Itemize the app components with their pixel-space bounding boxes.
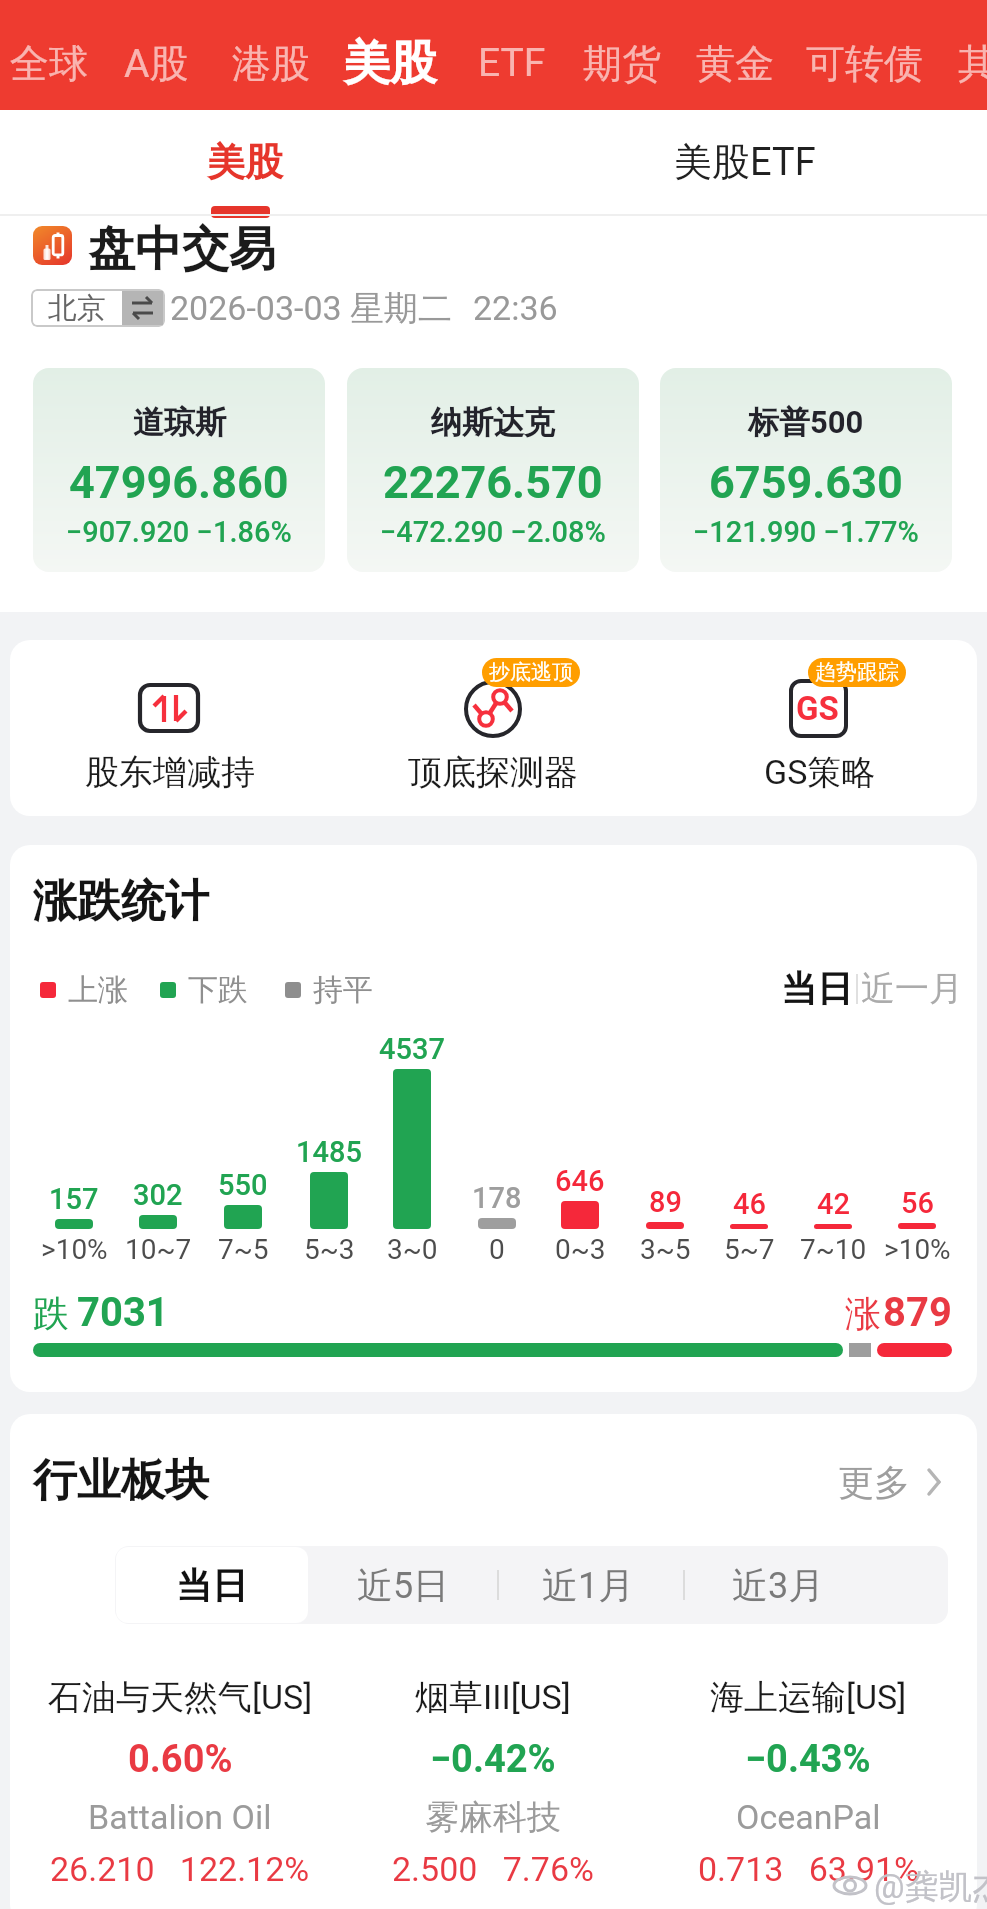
staticText: 879	[883, 1289, 952, 1336]
staticText: 46	[733, 1187, 766, 1221]
staticText: GS	[796, 689, 839, 728]
staticText: −907.920 −1.86%	[66, 515, 292, 549]
staticText: 跌	[33, 1291, 69, 1336]
staticText: 7031	[77, 1289, 169, 1336]
staticText: 22276.570	[383, 456, 603, 509]
button[interactable]	[60, 650, 280, 810]
button[interactable]: 其	[917, 8, 987, 118]
staticText: 上涨	[68, 971, 128, 1009]
staticText: 302	[133, 1178, 183, 1212]
staticText: 美股	[343, 34, 437, 93]
staticText: A股	[124, 39, 189, 88]
staticText: 趋势跟踪	[815, 659, 899, 685]
button[interactable]: 港股	[211, 8, 331, 118]
staticText: 海上运输[US]	[710, 1676, 907, 1719]
staticText: @龚凯杰	[874, 1865, 987, 1908]
button[interactable]: 美股ETF	[620, 112, 870, 212]
staticText: 持平	[313, 971, 373, 1009]
button[interactable]	[660, 368, 952, 572]
staticText: 其	[958, 39, 987, 88]
staticText: 近一月	[861, 967, 963, 1010]
staticText: 顶底探测器	[408, 751, 578, 794]
staticText: OceanPal	[736, 1797, 881, 1837]
staticText: 期货	[583, 39, 661, 88]
button[interactable]	[116, 1547, 308, 1623]
staticText: 10~7	[125, 1233, 192, 1266]
staticText: 下跌	[188, 971, 248, 1009]
staticText: >10%	[884, 1233, 951, 1266]
button[interactable]: 黄金	[675, 8, 795, 118]
staticText: 美股ETF	[674, 138, 816, 186]
staticText: 近1月	[542, 1563, 635, 1608]
button[interactable]	[30, 1660, 330, 1900]
staticText: 道琼斯	[133, 403, 226, 442]
staticText: 涨跌统计	[33, 874, 209, 929]
staticText: 股东增减持	[85, 751, 255, 794]
staticText: 646	[555, 1164, 605, 1198]
staticText: 3~5	[640, 1233, 691, 1266]
staticText: 26.210 122.12%	[50, 1849, 310, 1889]
button[interactable]	[710, 650, 930, 810]
staticText: 2026-03-03 星期二	[170, 287, 453, 330]
staticText: 0	[489, 1233, 505, 1266]
staticText: 89	[649, 1185, 682, 1219]
staticText: 行业板块	[33, 1453, 209, 1508]
button[interactable]	[513, 1546, 663, 1624]
staticText: 6759.630	[709, 456, 903, 509]
button[interactable]: 美股	[330, 8, 450, 118]
button[interactable]: A股	[96, 8, 216, 118]
staticText: 5~3	[304, 1233, 355, 1266]
button[interactable]	[864, 960, 960, 1016]
button[interactable]	[347, 368, 639, 572]
staticText: 42	[817, 1187, 850, 1221]
staticText: 22:36	[473, 288, 558, 328]
button[interactable]	[658, 1660, 958, 1900]
staticText: 0.60%	[128, 1737, 233, 1782]
button[interactable]	[33, 368, 325, 572]
staticText: 港股	[232, 39, 310, 88]
staticText: 1485	[296, 1135, 362, 1169]
staticText: −0.42%	[430, 1737, 556, 1782]
button[interactable]	[343, 1660, 643, 1900]
staticText: 抄底逃顶	[489, 659, 573, 685]
staticText: 雾麻科技	[425, 1796, 561, 1839]
button[interactable]	[383, 650, 603, 810]
staticText: 全球	[10, 39, 88, 88]
button[interactable]: ETF	[452, 8, 572, 118]
staticText: −472.290 −2.08%	[380, 515, 606, 549]
staticText: 4537	[379, 1032, 445, 1066]
staticText: GS策略	[764, 751, 876, 794]
staticText: 北京	[48, 290, 106, 327]
staticText: Battalion Oil	[88, 1797, 272, 1837]
staticText: 5~7	[724, 1233, 775, 1266]
button[interactable]	[772, 960, 860, 1016]
staticText: 纳斯达克	[431, 403, 555, 442]
staticText: 3~0	[387, 1233, 438, 1266]
button[interactable]	[31, 289, 165, 327]
staticText: 0.713 63.91%	[698, 1849, 919, 1889]
staticText: >10%	[41, 1233, 108, 1266]
staticText: 盘中交易	[88, 220, 276, 279]
staticText: 当日	[176, 1563, 248, 1608]
button[interactable]: 美股	[120, 112, 370, 212]
staticText: 47996.860	[69, 456, 289, 509]
staticText: 0~3	[555, 1233, 606, 1266]
staticText: −121.990 −1.77%	[693, 515, 919, 549]
staticText: 标普500	[748, 403, 864, 442]
staticText: 7~5	[218, 1233, 269, 1266]
button[interactable]: 期货	[562, 8, 682, 118]
button[interactable]	[703, 1546, 853, 1624]
staticText: 烟草III[US]	[415, 1676, 571, 1719]
staticText: 56	[901, 1186, 934, 1220]
button[interactable]: 可转债	[804, 8, 924, 118]
staticText: ETF	[478, 40, 546, 86]
button[interactable]	[330, 1546, 480, 1624]
button[interactable]: 全球	[0, 8, 109, 118]
staticText: 可转债	[806, 39, 923, 88]
staticText: 美股	[207, 138, 283, 186]
button[interactable]	[820, 1450, 960, 1510]
staticText: 178	[472, 1181, 522, 1215]
staticText: 石油与天然气[US]	[48, 1676, 313, 1719]
staticText: 更多	[838, 1460, 910, 1505]
staticText: −0.43%	[745, 1737, 871, 1782]
